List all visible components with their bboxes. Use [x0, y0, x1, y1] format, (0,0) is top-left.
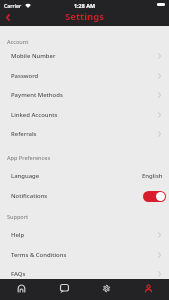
button[interactable]: Password — [0, 66, 169, 86]
staticText: Linked Accounts — [11, 111, 58, 119]
staticText: 1:28 AM — [74, 2, 95, 9]
staticText: Referrals — [11, 130, 37, 138]
staticText: Notifications — [11, 192, 48, 200]
staticText: App Preferences — [7, 154, 51, 161]
button[interactable]: Back — [0, 10, 15, 25]
button[interactable]: Notifications — [0, 186, 169, 206]
button[interactable]: Profile — [127, 279, 169, 300]
button[interactable]: Referrals — [0, 124, 169, 144]
staticText: FAQs — [11, 270, 26, 278]
staticText: Terms & Conditions — [11, 251, 67, 259]
button[interactable]: Language — [0, 166, 169, 186]
staticText: Carrier — [4, 2, 22, 9]
staticText: Mobile Number — [11, 52, 56, 60]
button[interactable]: Payment Methods — [0, 85, 169, 105]
staticText: English — [142, 172, 163, 180]
button[interactable]: Help — [0, 225, 169, 245]
button[interactable]: Linked Accounts — [0, 105, 169, 125]
button[interactable]: Mobile Number — [0, 46, 169, 66]
button[interactable]: Terms & Conditions — [0, 245, 169, 265]
staticText: Settings — [65, 10, 104, 23]
staticText: Support — [7, 213, 29, 220]
button[interactable]: FAQs — [0, 264, 169, 284]
staticText: Language — [11, 172, 40, 180]
button[interactable]: Home — [0, 279, 43, 300]
staticText: Password — [11, 72, 39, 80]
staticText: Help — [11, 231, 25, 239]
staticText: Payment Methods — [11, 91, 63, 99]
staticText: Account — [7, 38, 29, 45]
button[interactable]: Notifications toggle — [143, 191, 166, 202]
button[interactable]: Messages — [43, 279, 85, 300]
button[interactable]: Settings — [85, 279, 127, 300]
